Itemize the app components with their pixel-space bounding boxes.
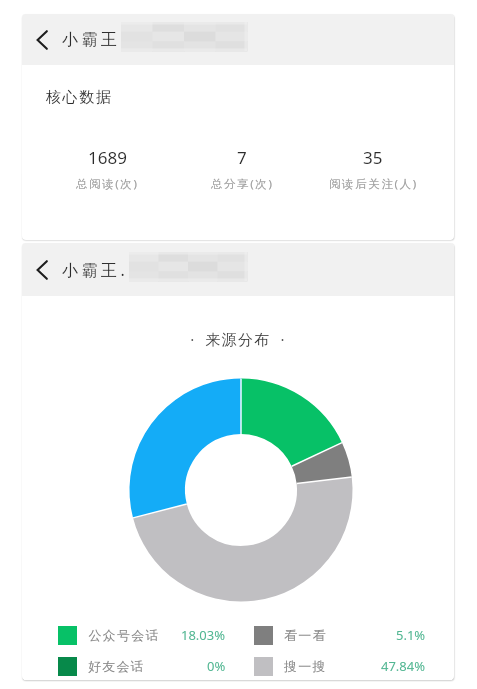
button[interactable]: Back	[22, 14, 62, 65]
staticText: 总阅读(次)	[76, 176, 139, 192]
staticText: 35	[363, 146, 383, 169]
staticText: 18.03%	[181, 626, 226, 644]
staticText: 公众号会话	[88, 627, 159, 643]
staticText: 好友会话	[88, 658, 145, 674]
staticText: 阅读后关注(人)	[329, 176, 418, 192]
button[interactable]: Back	[22, 14, 454, 65]
button[interactable]: 搜一搜	[254, 653, 426, 679]
staticText: 小霸王	[62, 30, 121, 50]
staticText: 搜一搜	[284, 658, 327, 674]
button[interactable]: 公众号会话	[58, 622, 226, 648]
staticText: 总分享(次)	[211, 176, 274, 192]
staticText: 看一看	[284, 627, 327, 643]
staticText: 小霸王.	[62, 259, 129, 281]
staticText: · 来源分布 ·	[22, 329, 454, 349]
staticText: 47.84%	[381, 657, 426, 675]
button[interactable]: Back	[22, 243, 62, 296]
button[interactable]: Back	[22, 243, 454, 296]
staticText: 7	[237, 146, 247, 169]
staticText: 1689	[88, 146, 127, 169]
button[interactable]: 好友会话	[58, 653, 226, 679]
staticText: 核心数据	[46, 88, 113, 107]
button[interactable]: 看一看	[254, 622, 426, 648]
staticText: 5.1%	[396, 626, 426, 644]
staticText: 0%	[207, 657, 226, 675]
